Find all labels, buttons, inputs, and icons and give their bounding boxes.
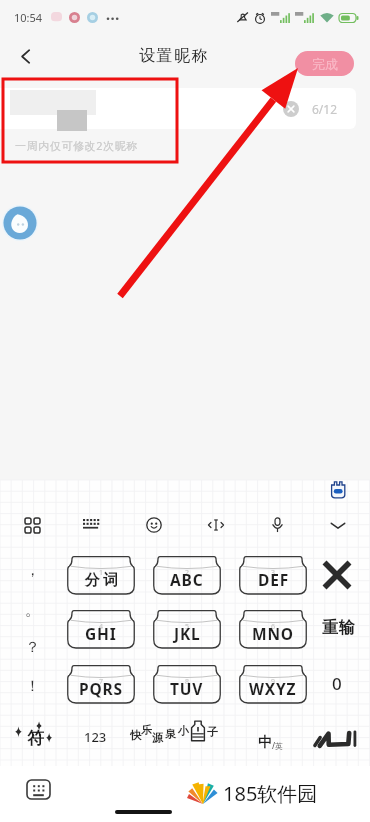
- staticText: 4: [99, 622, 104, 632]
- staticText: 泉: [165, 727, 176, 741]
- staticText: 9: [271, 677, 276, 687]
- staticText: 0: [332, 672, 342, 695]
- button[interactable]: 1: [66, 554, 136, 595]
- button[interactable]: 重输: [316, 613, 360, 642]
- button[interactable]: 符: [13, 718, 55, 754]
- button[interactable]: 9: [238, 663, 308, 704]
- staticText: 3: [271, 568, 276, 578]
- staticText: 符: [27, 728, 44, 749]
- staticText: 重输: [322, 618, 355, 638]
- staticText: 10:54: [14, 10, 43, 25]
- button[interactable]: 0: [323, 669, 351, 697]
- button[interactable]: 。: [18, 596, 46, 624]
- button[interactable]: Emoji: [138, 509, 170, 541]
- button[interactable]: 123: [78, 724, 112, 750]
- button[interactable]: ！: [18, 672, 46, 700]
- staticText: 小: [178, 724, 189, 738]
- button[interactable]: 4: [66, 608, 136, 649]
- staticText: 完成: [312, 56, 338, 72]
- staticText: 子: [207, 725, 218, 739]
- button[interactable]: ？: [18, 633, 46, 661]
- button[interactable]: Voice input: [261, 509, 293, 541]
- staticText: ，: [25, 561, 40, 580]
- staticText: JKL: [174, 623, 201, 644]
- button[interactable]: 2: [152, 554, 222, 595]
- staticText: ？: [25, 638, 40, 657]
- button[interactable]: 完成: [295, 51, 354, 76]
- staticText: MNO: [252, 623, 294, 644]
- button[interactable]: Back: [8, 39, 42, 73]
- staticText: 源: [152, 731, 163, 745]
- button[interactable]: ，: [18, 556, 46, 584]
- staticText: PQRS: [79, 678, 123, 699]
- button[interactable]: Clear text: [283, 101, 299, 117]
- button[interactable]: 8: [152, 663, 222, 704]
- staticText: 中: [258, 734, 272, 752]
- button[interactable]: Keyboard brand: [328, 479, 348, 499]
- staticText: 乐: [141, 723, 152, 737]
- staticText: 分词: [83, 571, 120, 590]
- button[interactable]: 3: [238, 554, 308, 595]
- staticText: 7: [99, 677, 104, 687]
- staticText: 设置昵称: [139, 46, 210, 66]
- button[interactable]: Assistant: [2, 205, 38, 241]
- staticText: 。: [25, 601, 40, 620]
- staticText: ABC: [170, 569, 204, 590]
- button[interactable]: 7: [66, 663, 136, 704]
- staticText: 1: [99, 568, 104, 578]
- staticText: 6: [271, 622, 276, 632]
- staticText: 123: [84, 728, 107, 746]
- staticText: 8: [185, 677, 190, 687]
- button[interactable]: 6: [238, 608, 308, 649]
- button[interactable]: Keyboard layout: [76, 509, 108, 541]
- button[interactable]: Enter: [314, 722, 358, 752]
- staticText: DEF: [258, 569, 289, 590]
- staticText: 快: [130, 728, 141, 742]
- staticText: 185软件园: [223, 780, 318, 807]
- button[interactable]: Apps: [16, 509, 48, 541]
- staticText: TUV: [170, 678, 204, 699]
- button[interactable]: 5: [152, 608, 222, 649]
- staticText: WXYZ: [249, 678, 297, 699]
- button[interactable]: Clear text: [0, 88, 356, 129]
- button[interactable]: Show keyboard: [27, 780, 50, 799]
- button[interactable]: Home: [115, 810, 172, 814]
- button[interactable]: Cursor control: [200, 509, 232, 541]
- staticText: /英: [272, 740, 284, 751]
- staticText: 5: [185, 622, 190, 632]
- button[interactable]: Delete: [320, 558, 353, 591]
- staticText: GHI: [85, 623, 117, 644]
- staticText: 一周内仅可修改2次昵称: [15, 138, 138, 153]
- button[interactable]: 中: [258, 722, 284, 752]
- staticText: 6/12: [312, 101, 338, 117]
- staticText: ！: [25, 677, 40, 696]
- button[interactable]: 快: [130, 716, 234, 752]
- button[interactable]: Hide keyboard: [322, 509, 354, 541]
- staticText: 2: [185, 568, 190, 578]
